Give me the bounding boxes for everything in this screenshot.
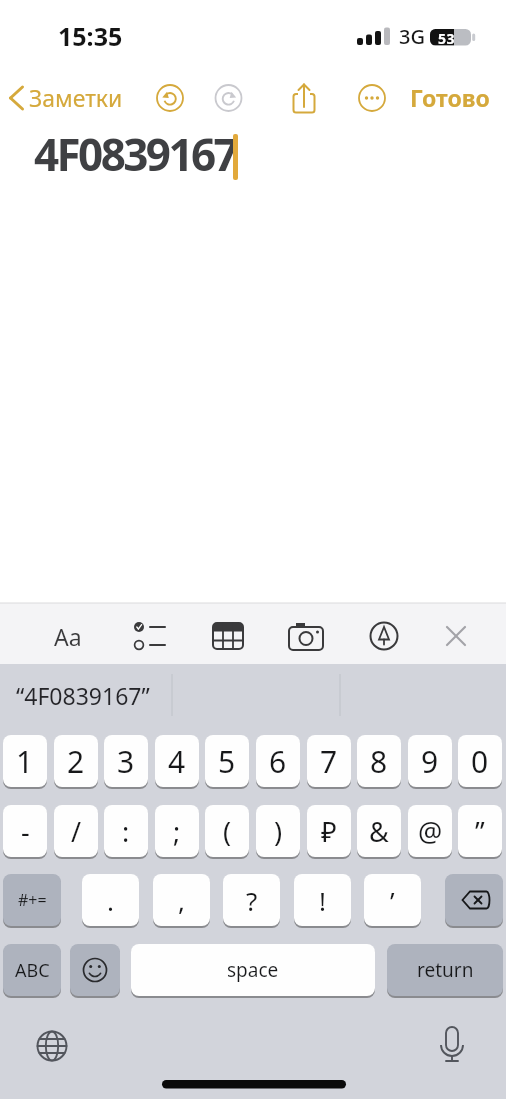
button[interactable] bbox=[212, 82, 244, 114]
button[interactable]: / bbox=[54, 805, 98, 857]
button[interactable] bbox=[445, 874, 503, 926]
staticText: 5 bbox=[218, 741, 236, 782]
staticText: ; bbox=[173, 813, 181, 850]
button[interactable]: , bbox=[153, 874, 210, 926]
staticText: , bbox=[178, 883, 185, 918]
staticText: 3 bbox=[117, 741, 135, 782]
staticText: ” bbox=[475, 813, 485, 850]
button[interactable]: ) bbox=[256, 805, 300, 857]
button[interactable] bbox=[440, 620, 472, 652]
staticText: “4F0839167” bbox=[16, 680, 150, 711]
button[interactable]: ( bbox=[205, 805, 249, 857]
staticText: 15:35 bbox=[58, 19, 123, 47]
staticText: 6 bbox=[269, 741, 287, 782]
button[interactable] bbox=[288, 82, 320, 114]
button[interactable]: 9 bbox=[408, 735, 452, 787]
button[interactable]: Aa bbox=[48, 620, 88, 652]
button[interactable]: : bbox=[104, 805, 148, 857]
button[interactable] bbox=[290, 620, 322, 652]
staticText: ( bbox=[223, 813, 232, 850]
button[interactable]: ’ bbox=[364, 874, 421, 926]
button[interactable]: Заметки bbox=[29, 82, 127, 110]
button[interactable]: 5 bbox=[205, 735, 249, 787]
staticText: / bbox=[71, 813, 82, 850]
button[interactable]: & bbox=[357, 805, 401, 857]
button[interactable] bbox=[70, 944, 120, 996]
button[interactable]: ” bbox=[458, 805, 502, 857]
button[interactable]: 4 bbox=[155, 735, 199, 787]
button[interactable]: 0 bbox=[458, 735, 502, 787]
button[interactable]: ? bbox=[223, 874, 280, 926]
staticText: 0 bbox=[471, 741, 489, 782]
staticText: #+= bbox=[18, 889, 47, 911]
staticText: 7 bbox=[320, 741, 338, 782]
staticText: Aa bbox=[54, 621, 82, 652]
button[interactable]: Готово bbox=[406, 82, 494, 110]
staticText: @ bbox=[418, 813, 443, 850]
button[interactable]: 3 bbox=[104, 735, 148, 787]
staticText: Заметки bbox=[29, 82, 123, 110]
button[interactable] bbox=[356, 82, 388, 114]
button[interactable] bbox=[434, 1026, 470, 1062]
button[interactable] bbox=[212, 620, 244, 652]
staticText: ! bbox=[319, 883, 326, 918]
button[interactable]: “4F0839167” bbox=[16, 678, 176, 712]
staticText: ₽ bbox=[321, 813, 337, 850]
staticText: : bbox=[122, 813, 130, 850]
button[interactable]: 2 bbox=[54, 735, 98, 787]
button[interactable]: ; bbox=[155, 805, 199, 857]
button[interactable] bbox=[154, 82, 186, 114]
button[interactable]: space bbox=[131, 944, 375, 996]
button[interactable]: ₽ bbox=[307, 805, 351, 857]
button[interactable]: 1 bbox=[3, 735, 47, 787]
button[interactable] bbox=[131, 620, 163, 652]
button[interactable]: 6 bbox=[256, 735, 300, 787]
staticText: . bbox=[107, 883, 114, 918]
staticText: space bbox=[227, 957, 279, 983]
staticText: Готово bbox=[410, 82, 490, 110]
staticText: 8 bbox=[370, 741, 388, 782]
button[interactable]: #+= bbox=[3, 874, 61, 926]
staticText: 1 bbox=[16, 741, 34, 782]
staticText: ? bbox=[246, 883, 258, 918]
button[interactable] bbox=[34, 1028, 70, 1064]
staticText: ABC bbox=[15, 958, 50, 983]
staticText: - bbox=[21, 813, 30, 850]
button[interactable]: . bbox=[82, 874, 139, 926]
button[interactable]: return bbox=[387, 944, 503, 996]
button[interactable] bbox=[368, 620, 400, 652]
staticText: ) bbox=[274, 813, 283, 850]
staticText: return bbox=[417, 957, 474, 983]
button[interactable]: 7 bbox=[307, 735, 351, 787]
staticText: 9 bbox=[421, 741, 439, 782]
staticText: & bbox=[369, 813, 389, 850]
staticText: 3G bbox=[399, 23, 425, 45]
staticText: 53 bbox=[438, 29, 456, 46]
staticText: 4F0839167 bbox=[34, 124, 237, 172]
button[interactable]: - bbox=[3, 805, 47, 857]
button[interactable]: 8 bbox=[357, 735, 401, 787]
button[interactable]: ! bbox=[294, 874, 351, 926]
button[interactable]: @ bbox=[408, 805, 452, 857]
button[interactable]: ABC bbox=[3, 944, 61, 996]
staticText: 4 bbox=[168, 741, 186, 782]
staticText: 2 bbox=[67, 741, 85, 782]
staticText: ’ bbox=[390, 883, 395, 918]
